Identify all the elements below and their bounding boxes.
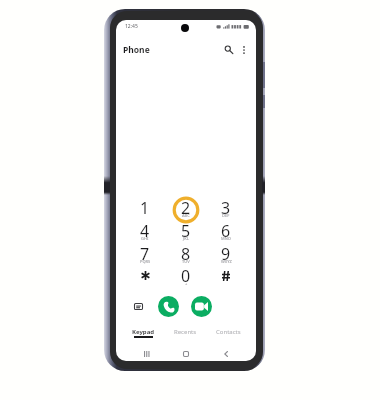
staticText: 0	[181, 265, 191, 287]
staticText: Phone	[123, 44, 150, 56]
button[interactable]: 2	[170, 197, 202, 220]
button[interactable]: Recents	[162, 325, 208, 340]
staticText: PQRS	[140, 259, 151, 264]
staticText: 1	[140, 197, 150, 219]
button[interactable]: Recent apps	[140, 347, 154, 361]
staticText: WXYZ	[221, 259, 232, 264]
staticText: MNO	[221, 236, 231, 241]
staticText: TUV	[182, 259, 190, 264]
staticText: 12:45	[125, 23, 138, 30]
button[interactable]: 0	[170, 265, 202, 288]
button[interactable]: Back	[219, 347, 233, 361]
button[interactable]: 8	[170, 243, 202, 266]
button[interactable]: Keypad	[120, 325, 166, 340]
staticText: JKL	[183, 236, 189, 241]
staticText: Recents	[174, 328, 197, 336]
staticText: 5	[181, 220, 191, 242]
staticText: Keypad	[132, 328, 155, 336]
button[interactable]: 7	[129, 243, 161, 266]
button[interactable]: More options	[236, 42, 251, 57]
button[interactable]: 3	[210, 197, 242, 220]
button[interactable]: Home	[179, 347, 193, 361]
staticText: GHI	[141, 236, 149, 241]
button[interactable]: 5	[170, 220, 202, 243]
staticText: Contacts	[216, 328, 241, 336]
staticText: 4	[140, 220, 150, 242]
staticText: 3	[221, 197, 231, 219]
staticText: 7	[140, 243, 150, 265]
staticText: DEF	[222, 213, 230, 218]
button[interactable]: Search	[221, 42, 236, 57]
button[interactable]: Video call	[191, 296, 212, 317]
button[interactable]: 1	[129, 197, 161, 220]
staticText: 9	[221, 243, 231, 265]
staticText: +	[185, 281, 188, 286]
button[interactable]: 6	[210, 220, 242, 243]
button[interactable]	[210, 265, 242, 288]
staticText: 8	[181, 243, 191, 265]
button[interactable]: Call	[158, 296, 179, 317]
staticText: 6	[221, 220, 231, 242]
staticText: ABC	[182, 213, 190, 218]
button[interactable]: Video message	[131, 299, 146, 314]
button[interactable]	[129, 265, 161, 288]
button[interactable]: 4	[129, 220, 161, 243]
staticText: 2	[181, 197, 191, 219]
button[interactable]: Contacts	[205, 325, 251, 340]
button[interactable]: 9	[210, 243, 242, 266]
